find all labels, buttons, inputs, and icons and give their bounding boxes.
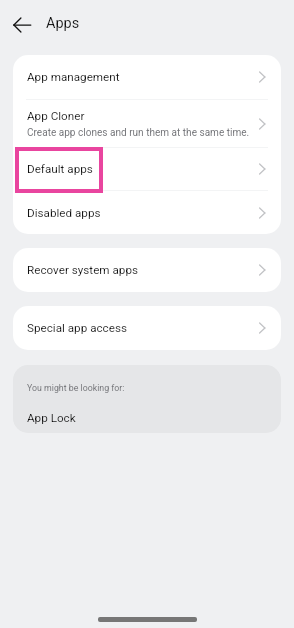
button[interactable]: Recover system apps [13,248,281,292]
staticText: Create app clones and run them at the sa… [27,127,250,139]
button[interactable]: App Cloner [13,100,281,147]
staticText: App management [27,70,120,84]
button[interactable]: App management [13,55,281,99]
button[interactable]: Special app access [13,306,281,350]
staticText: Disabled apps [27,206,101,220]
staticText: Special app access [27,321,127,335]
staticText: You might be looking for: [27,383,125,393]
staticText: Default apps [27,162,93,176]
staticText: Recover system apps [27,263,139,277]
button[interactable]: Back [7,10,37,40]
staticText: App Cloner [27,109,85,123]
staticText: Apps [46,15,80,32]
button[interactable]: Default apps [13,148,281,190]
button[interactable]: Disabled apps [13,191,281,234]
button[interactable]: App Lock [13,407,281,433]
staticText: App Lock [27,411,76,425]
